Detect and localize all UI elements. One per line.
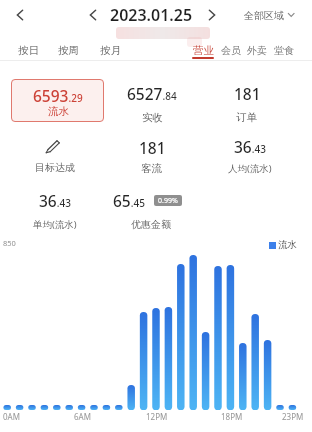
staticText: 实收 — [142, 111, 163, 124]
staticText: 2023.01.25 — [110, 4, 193, 26]
staticText: 流水 — [278, 239, 297, 251]
staticText: 会员 — [221, 44, 241, 57]
button[interactable]: 按日 — [11, 39, 45, 61]
button[interactable]: 外卖 — [244, 39, 270, 61]
staticText: 人均(流水) — [228, 162, 272, 175]
staticText: 181 — [139, 137, 166, 158]
staticText: 23PM — [282, 411, 304, 422]
staticText: 目标达成 — [35, 161, 75, 174]
staticText: 营业 — [193, 44, 214, 57]
staticText: 0.99% — [158, 196, 178, 206]
staticText: 优惠金额 — [131, 218, 171, 231]
button[interactable] — [8, 4, 32, 26]
staticText: 6593.29 — [33, 85, 83, 106]
staticText: 6AM — [74, 411, 91, 422]
button[interactable] — [11, 79, 104, 122]
staticText: 18PM — [221, 411, 243, 422]
button[interactable]: 营业 — [188, 39, 218, 61]
button[interactable] — [30, 137, 80, 159]
staticText: 外卖 — [247, 44, 267, 57]
staticText: 按月 — [100, 44, 121, 57]
button[interactable]: 全部区域 — [239, 4, 289, 26]
button[interactable]: 2023.01.25 — [81, 4, 221, 26]
staticText: 堂食 — [274, 44, 294, 57]
staticText: 36.43 — [234, 136, 266, 157]
staticText: 850 — [3, 238, 16, 248]
staticText: 6527.84 — [127, 83, 177, 104]
staticText: 181 — [234, 83, 261, 104]
staticText: 流水 — [48, 105, 69, 118]
staticText: 按日 — [18, 44, 39, 57]
staticText: 单均(流水) — [33, 218, 77, 231]
button[interactable]: 堂食 — [271, 39, 297, 61]
staticText: 65.45 — [113, 190, 145, 211]
staticText: 12PM — [146, 411, 168, 422]
staticText: 0AM — [3, 411, 20, 422]
button[interactable] — [82, 4, 104, 26]
staticText: 订单 — [236, 111, 257, 124]
button[interactable]: 按周 — [51, 39, 85, 61]
button[interactable]: 会员 — [218, 39, 244, 61]
staticText: 全部区域 — [244, 9, 284, 22]
button[interactable] — [201, 4, 223, 26]
staticText: 客流 — [141, 162, 162, 175]
staticText: 36.43 — [39, 190, 71, 211]
staticText: 按周 — [58, 44, 79, 57]
button[interactable]: 按月 — [93, 39, 127, 61]
